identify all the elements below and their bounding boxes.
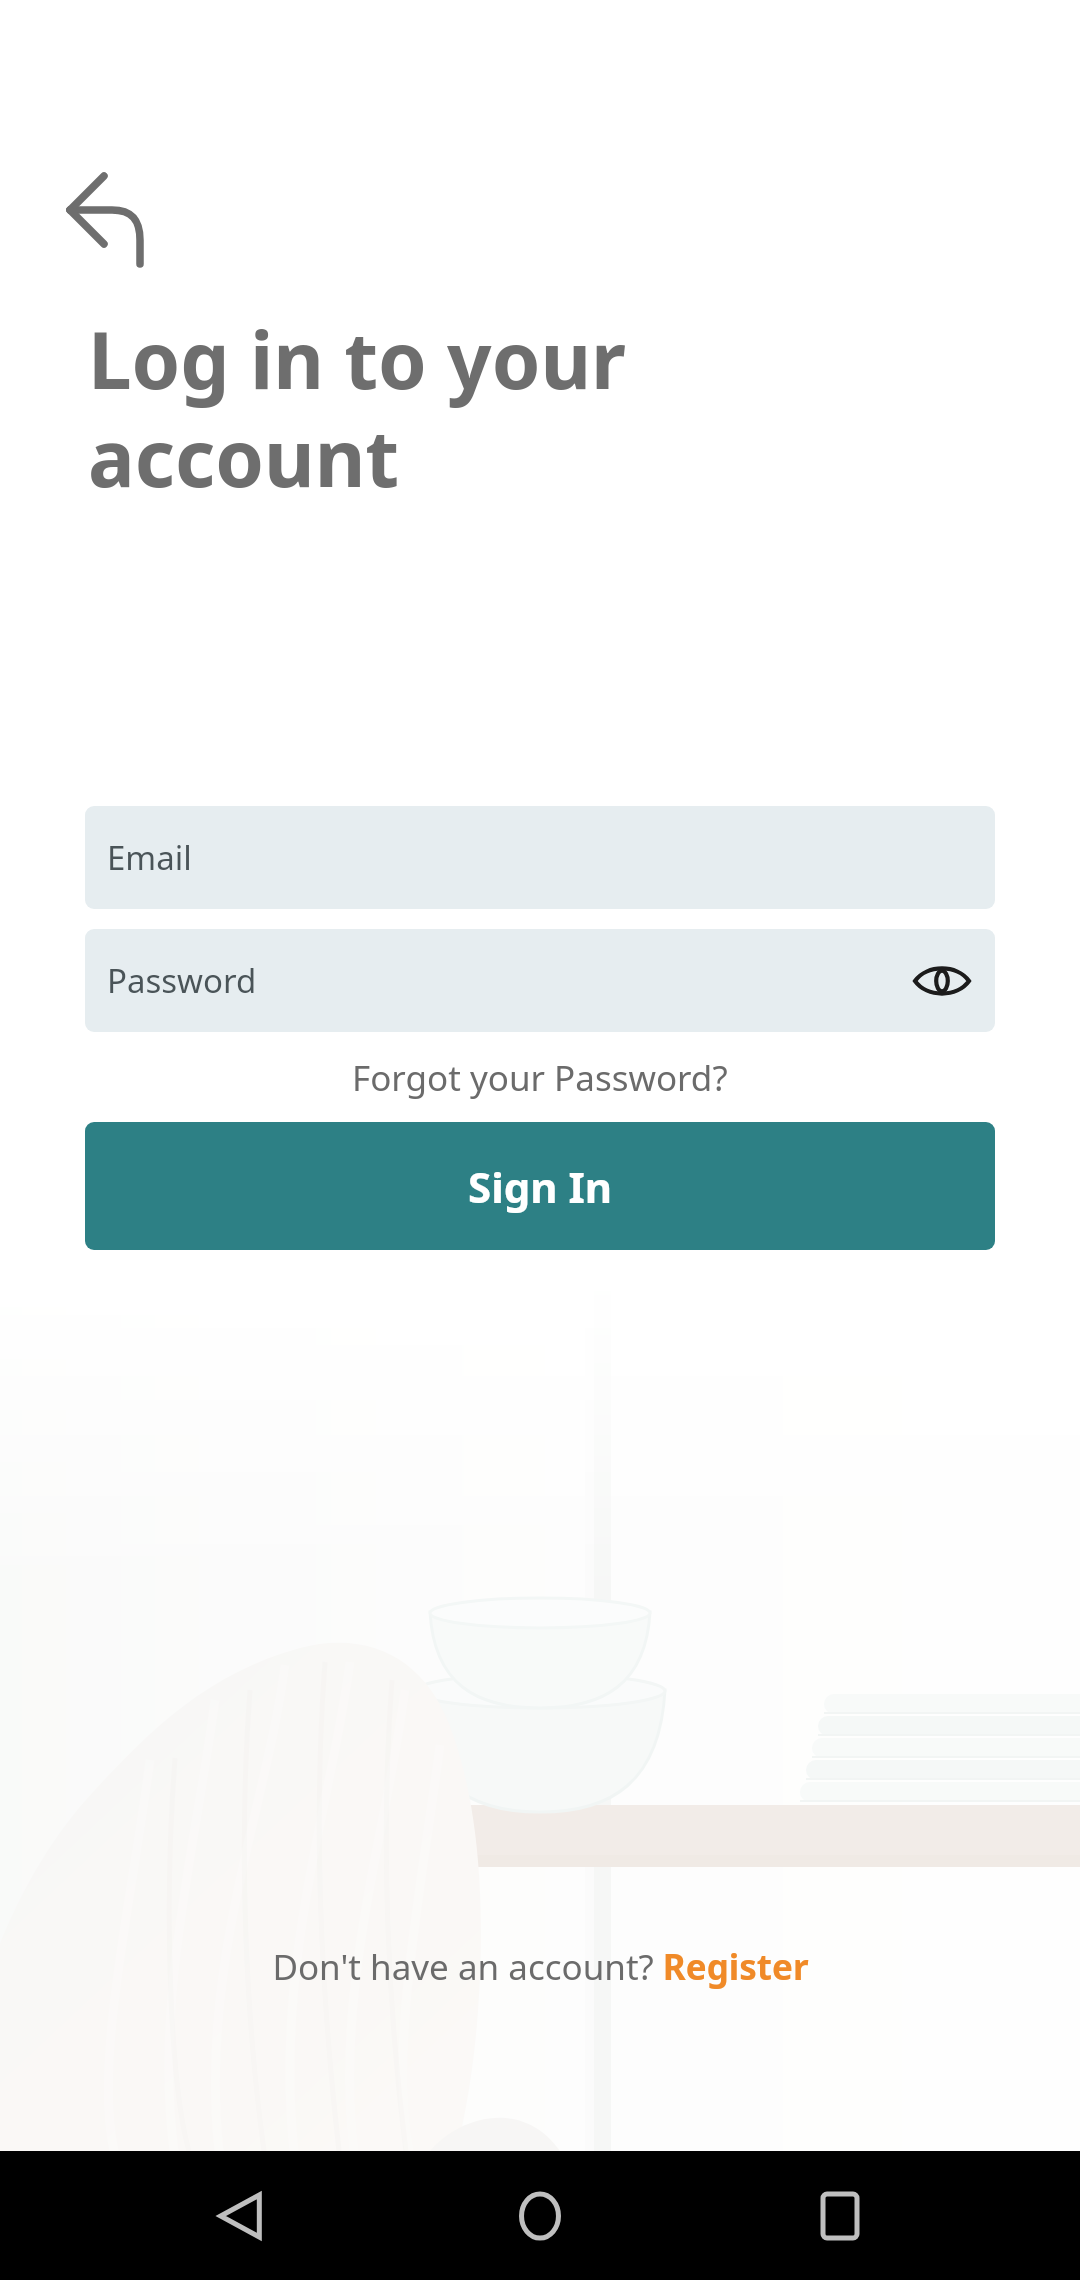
staticText: Forgot your Password? xyxy=(352,1054,728,1102)
button[interactable]: Home xyxy=(480,2156,600,2276)
button[interactable]: Recent apps xyxy=(780,2156,900,2276)
button[interactable]: Email xyxy=(85,806,995,909)
staticText: Email xyxy=(107,835,192,880)
button[interactable]: Show password xyxy=(911,958,973,1004)
staticText: Sign In xyxy=(468,1158,613,1215)
button[interactable]: Back xyxy=(66,168,162,252)
button[interactable]: Sign In xyxy=(85,1122,995,1250)
button[interactable]: Password xyxy=(85,929,995,1032)
staticText: Log in to your account xyxy=(88,306,626,510)
button[interactable]: Forgot your Password? xyxy=(85,1046,995,1110)
button[interactable]: Don't have an account? Register xyxy=(0,1933,1080,2001)
staticText: Don't have an account? Register xyxy=(272,1943,809,1991)
staticText: Password xyxy=(107,958,257,1003)
button[interactable]: Back xyxy=(180,2156,300,2276)
